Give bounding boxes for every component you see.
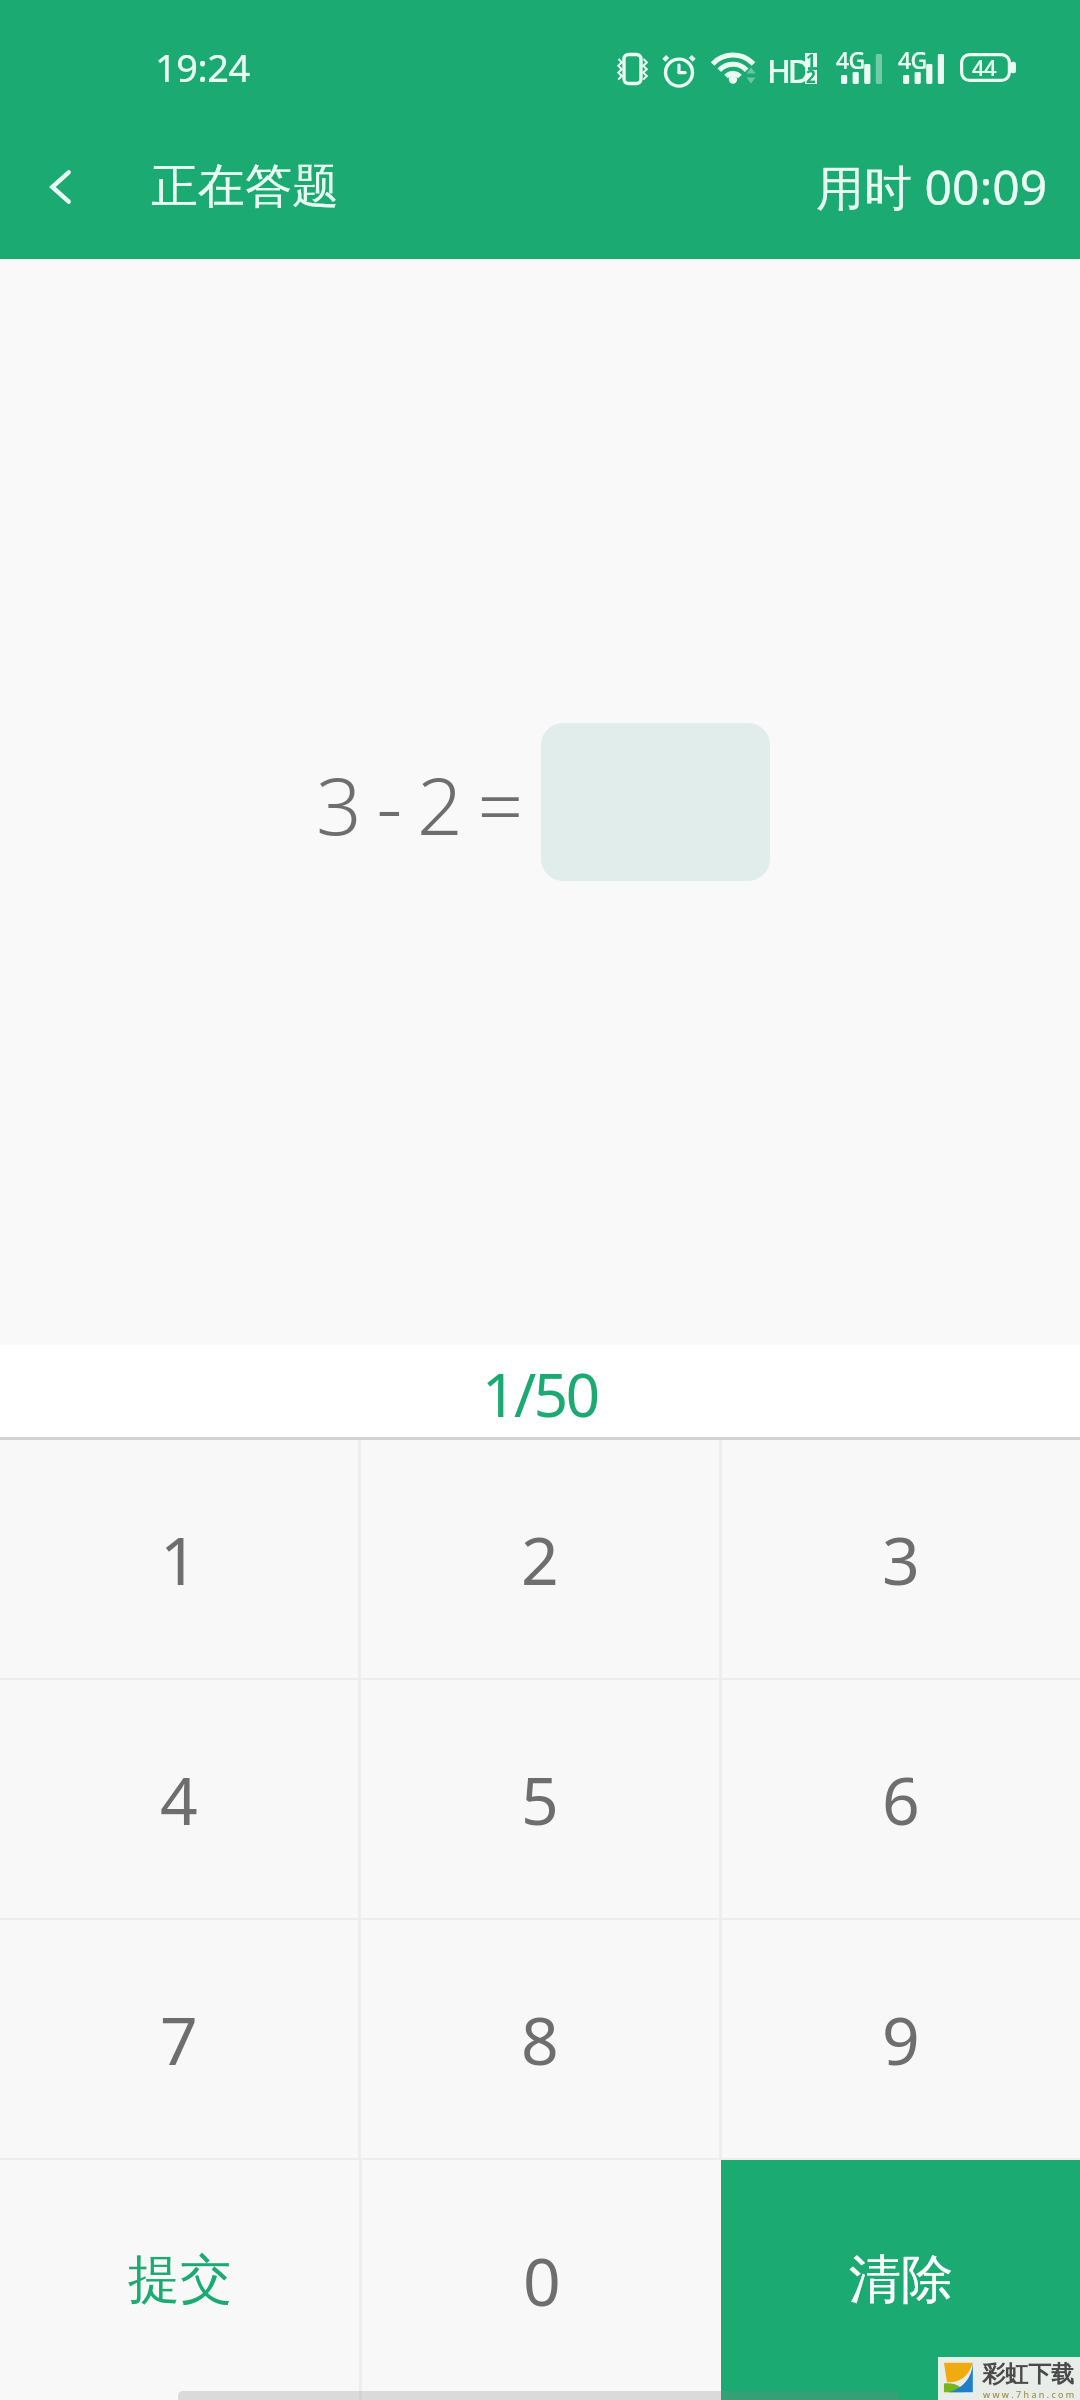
staticText: 0 xyxy=(523,2235,561,2325)
staticText: 正在答题 xyxy=(151,157,339,216)
staticText: 3 - 2 = xyxy=(316,749,521,858)
button[interactable]: 8 xyxy=(361,1920,719,2158)
staticText: 44 xyxy=(972,52,997,81)
button[interactable]: 3 xyxy=(722,1440,1080,1678)
staticText: 7 xyxy=(160,1994,198,2084)
staticText: 用时 00:09 xyxy=(816,154,1048,220)
staticText: 清除 xyxy=(849,2247,953,2313)
button[interactable]: 7 xyxy=(0,1920,358,2158)
staticText: 4G xyxy=(836,44,865,75)
staticText: 1 xyxy=(806,49,816,72)
staticText: w w w . 7 h a n . c o m xyxy=(983,2388,1075,2400)
button[interactable]: 2 xyxy=(361,1440,719,1678)
staticText: 5 xyxy=(521,1754,559,1844)
staticText: 9 xyxy=(882,1994,920,2084)
button[interactable]: 9 xyxy=(722,1920,1080,2158)
staticText: 3 xyxy=(882,1514,920,1604)
button[interactable]: 提交 xyxy=(0,2160,359,2400)
staticText: 2 xyxy=(806,65,816,88)
staticText: 提交 xyxy=(128,2247,232,2313)
button[interactable]: 清除 xyxy=(721,2160,1080,2400)
staticText: 彩虹下载 xyxy=(982,2360,1074,2389)
button[interactable]: 5 xyxy=(361,1680,719,1918)
staticText: 1 xyxy=(160,1514,198,1604)
button[interactable]: Back xyxy=(0,115,122,259)
staticText: 6 xyxy=(882,1754,920,1844)
staticText: 4 xyxy=(160,1754,198,1844)
staticText: 4G xyxy=(898,44,927,75)
button[interactable]: 6 xyxy=(722,1680,1080,1918)
staticText: 19:24 xyxy=(155,41,250,93)
button[interactable]: 4 xyxy=(0,1680,358,1918)
staticText: 1/50 xyxy=(482,1353,598,1435)
button[interactable]: 1 xyxy=(0,1440,358,1678)
staticText: HD xyxy=(767,49,808,89)
button[interactable]: 0 xyxy=(362,2160,721,2400)
staticText: 8 xyxy=(521,1994,559,2084)
staticText: 2 xyxy=(521,1514,559,1604)
button[interactable]: 用时 00:09 xyxy=(816,154,1048,220)
